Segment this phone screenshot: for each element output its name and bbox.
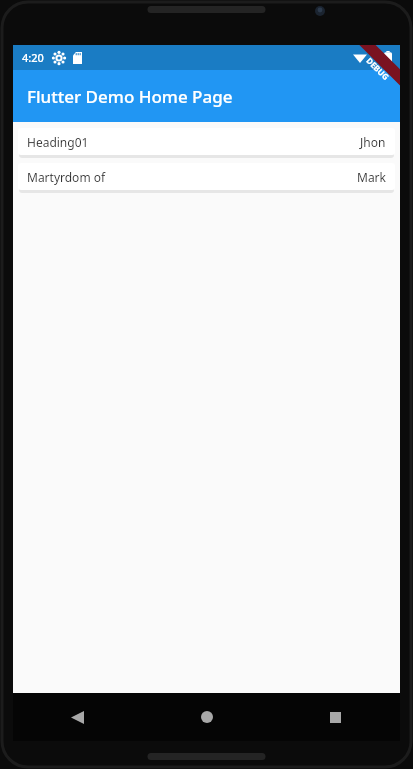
staticText: DEBUG	[364, 55, 392, 82]
button[interactable]: Recent apps	[271, 693, 400, 741]
staticText: 4:20	[22, 50, 44, 65]
staticText: Martyrdom of	[27, 169, 106, 185]
staticText: Heading01	[27, 134, 89, 150]
button[interactable]: Back	[13, 693, 142, 741]
button[interactable]: Martyrdom of	[18, 163, 395, 190]
staticText: Flutter Demo Home Page	[27, 85, 233, 108]
button[interactable]: Home	[142, 693, 271, 741]
staticText: Mark	[357, 169, 386, 185]
button[interactable]: Heading01	[18, 128, 395, 155]
staticText: Jhon	[360, 134, 386, 150]
